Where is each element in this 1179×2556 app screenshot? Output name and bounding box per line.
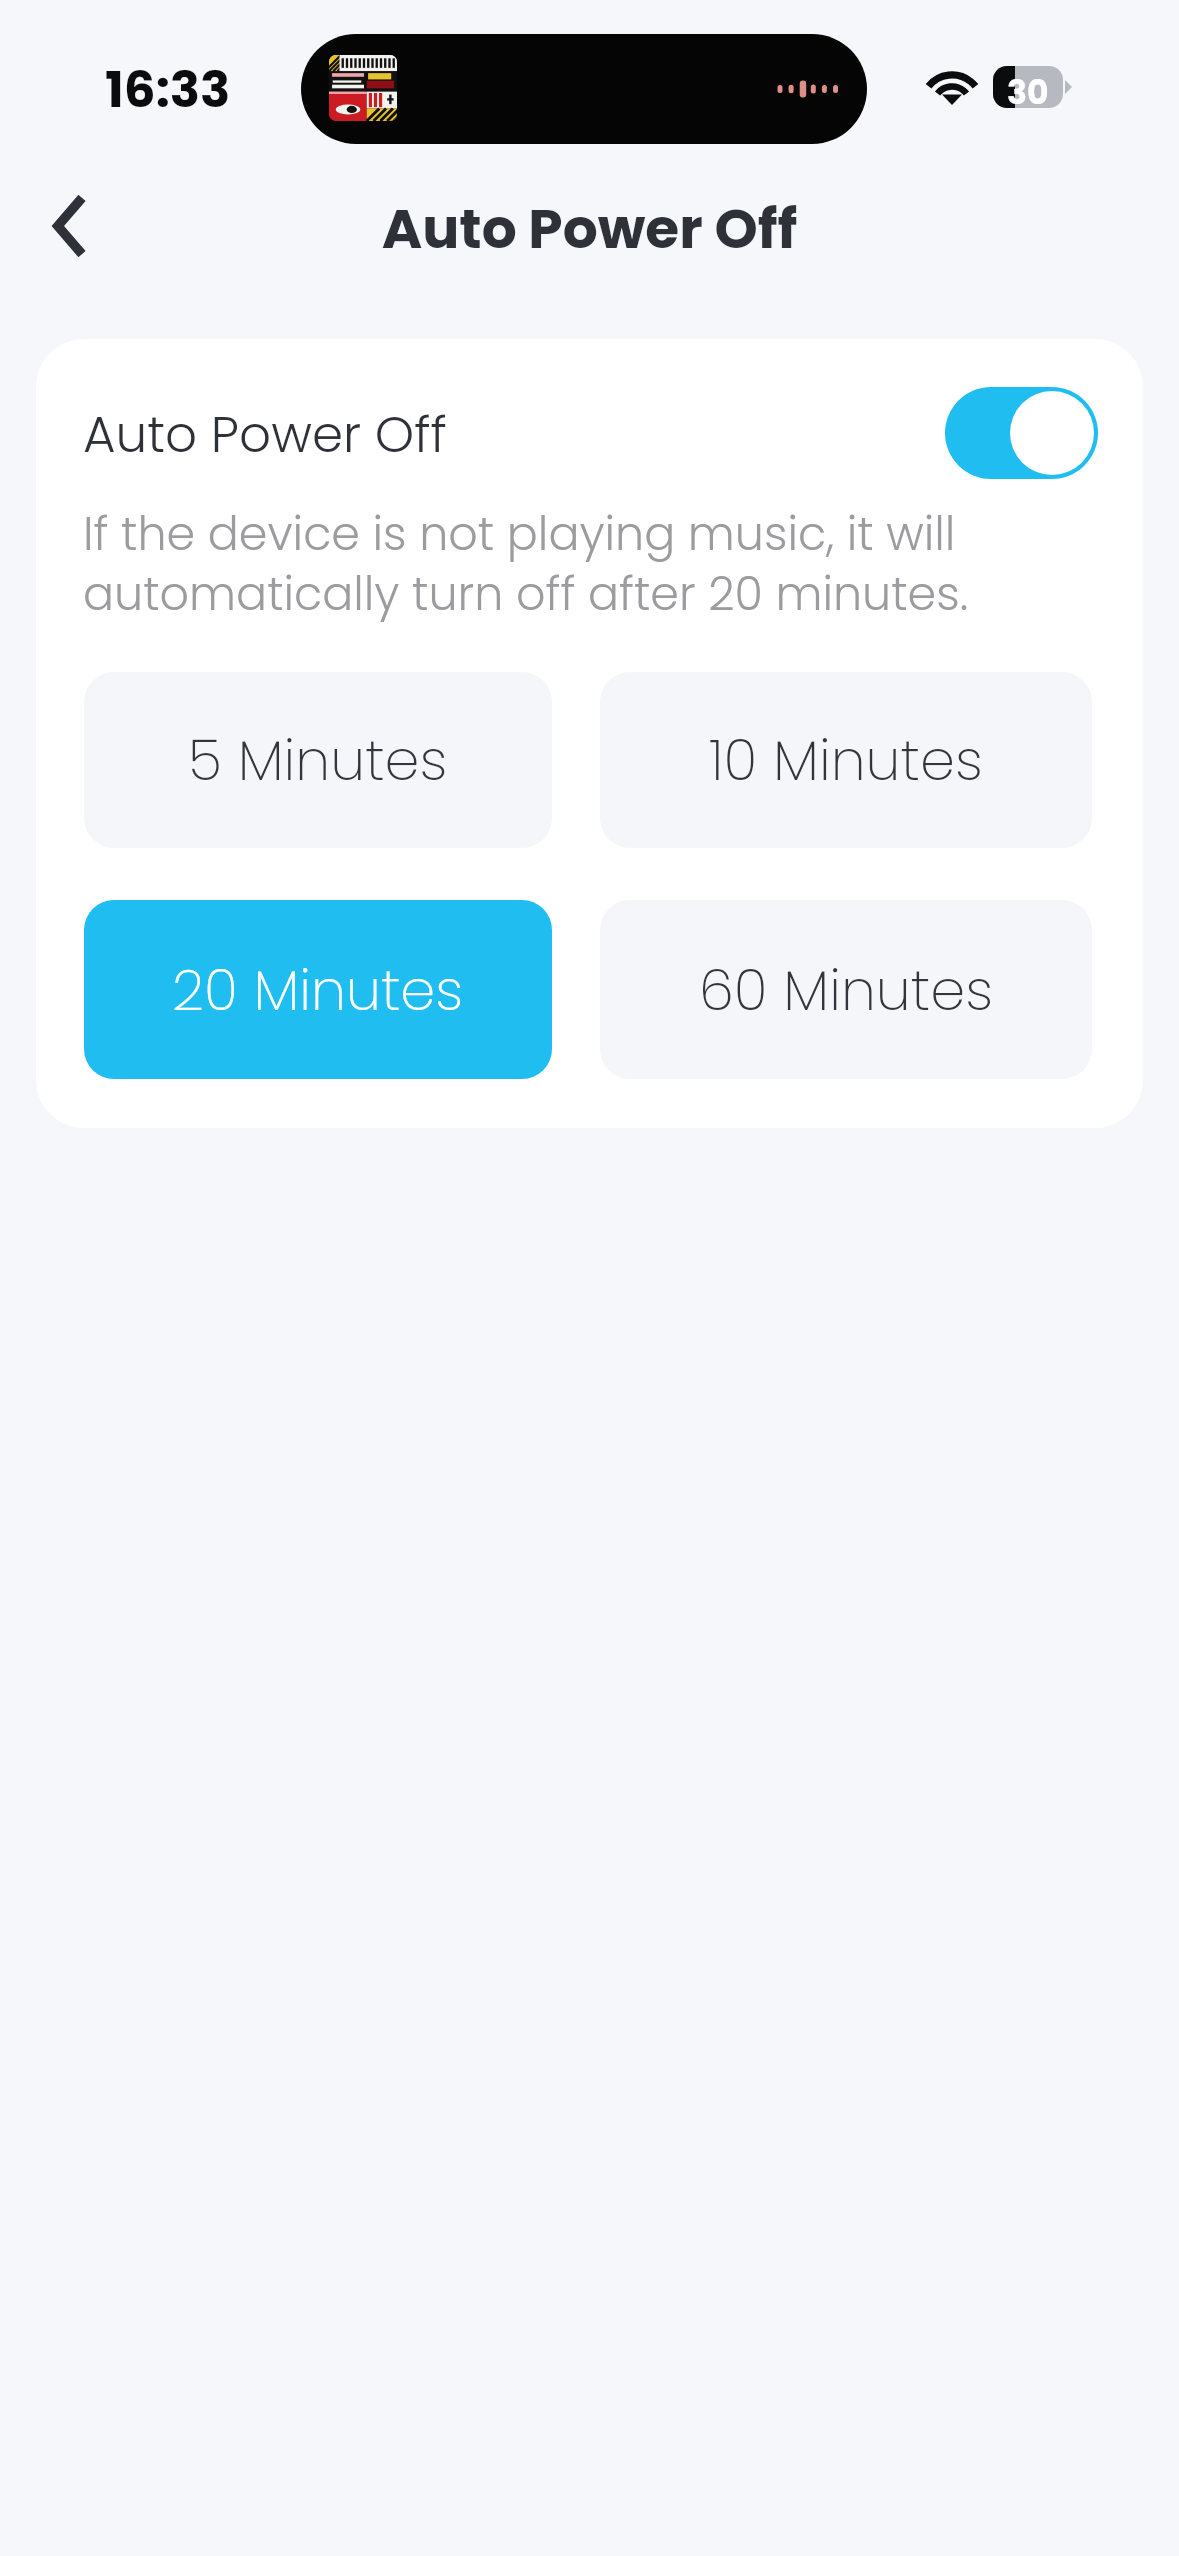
button[interactable] <box>945 387 1098 479</box>
button[interactable]: 60 Minutes <box>600 900 1092 1079</box>
staticText: 5 Minutes <box>188 721 448 799</box>
staticText: 30 <box>1007 69 1049 111</box>
staticText: 16:33 <box>105 55 231 125</box>
staticText: If the device is not playing music, it w… <box>83 502 969 626</box>
staticText: 10 Minutes <box>709 721 983 799</box>
staticText: 20 Minutes <box>172 951 464 1029</box>
staticText: Auto Power Off <box>0 190 1179 267</box>
button[interactable]: 20 Minutes <box>84 900 552 1079</box>
staticText: Auto Power Off <box>83 400 447 470</box>
button[interactable]: 5 Minutes <box>84 672 552 848</box>
staticText: 60 Minutes <box>699 951 993 1029</box>
button[interactable]: Back <box>17 177 115 275</box>
button[interactable]: 10 Minutes <box>600 672 1092 848</box>
